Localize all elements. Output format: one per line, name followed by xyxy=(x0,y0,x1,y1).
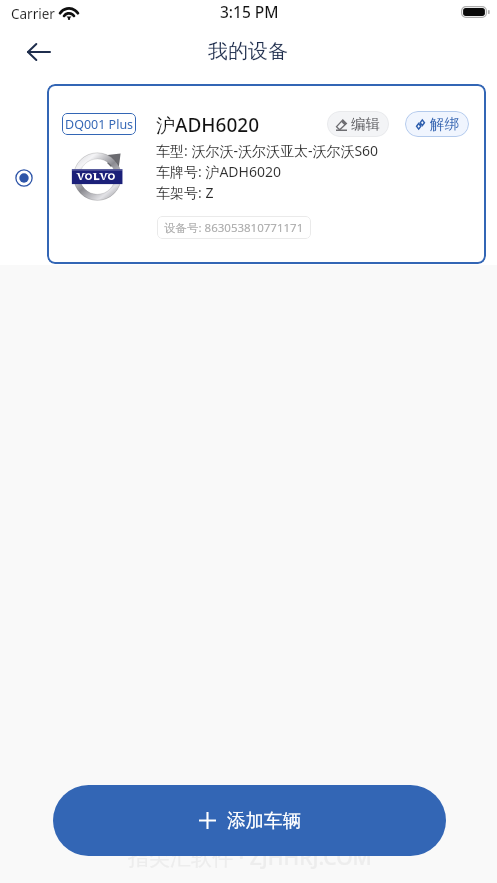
button[interactable]: 添加车辆 xyxy=(53,785,446,856)
staticText: 3:15 PM xyxy=(220,1,279,22)
staticText: 解绑 xyxy=(430,115,459,133)
button[interactable]: DQ001 Plus xyxy=(47,84,486,264)
staticText: 车型: 沃尔沃-沃尔沃亚太-沃尔沃S60 xyxy=(156,141,379,160)
staticText: 指尖汇软件 · ZJHHRJ.COM xyxy=(128,843,372,872)
button[interactable]: Back xyxy=(16,29,61,74)
staticText: 编辑 xyxy=(351,115,380,133)
staticText: DQ001 Plus xyxy=(65,116,134,133)
button[interactable]: DQ001 Plus xyxy=(62,113,136,135)
staticText: 车架号: Z xyxy=(156,183,214,202)
button[interactable]: Select device xyxy=(12,166,35,189)
button[interactable]: 设备号: 863053810771171 xyxy=(157,216,311,239)
button[interactable]: 编辑 xyxy=(327,111,389,137)
staticText: 车牌号: 沪ADH6020 xyxy=(156,162,281,181)
staticText: Carrier xyxy=(11,5,55,23)
staticText: 设备号: 863053810771171 xyxy=(164,220,304,236)
button[interactable]: 解绑 xyxy=(405,111,469,137)
staticText: 沪ADH6020 xyxy=(156,112,260,138)
staticText: 添加车辆 xyxy=(227,809,301,832)
staticText: 我的设备 xyxy=(208,39,288,64)
